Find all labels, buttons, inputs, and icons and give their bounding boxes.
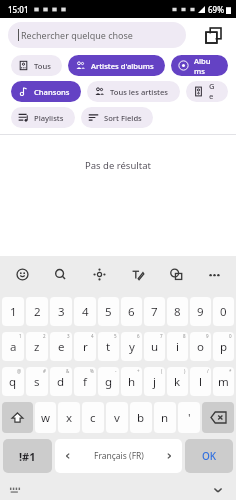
staticText: z xyxy=(34,339,40,355)
button[interactable]: Tous xyxy=(11,55,62,76)
staticText: k xyxy=(174,374,181,390)
staticText: Genres xyxy=(209,81,217,102)
staticText: v xyxy=(114,410,120,426)
staticText: t xyxy=(106,339,111,355)
button[interactable]: 3 xyxy=(50,297,72,326)
button[interactable]: x xyxy=(58,402,80,433)
button[interactable]: * xyxy=(213,367,234,396)
button[interactable]: 5 xyxy=(98,297,119,326)
button[interactable]: & xyxy=(50,367,72,396)
staticText: l xyxy=(199,374,202,390)
button[interactable]: Rechercher quelque chose xyxy=(8,22,186,48)
button[interactable]: Sort Fields xyxy=(81,107,153,128)
staticText: + xyxy=(137,368,140,374)
staticText: 15:01 xyxy=(8,4,29,15)
button[interactable]: 7 xyxy=(144,332,165,361)
staticText: / xyxy=(207,368,209,374)
staticText: 4 xyxy=(82,304,89,320)
staticText: - xyxy=(115,368,117,374)
staticText: y xyxy=(129,339,135,355)
button[interactable]: # xyxy=(26,367,48,396)
button[interactable]: - xyxy=(98,367,119,396)
button[interactable]: 7 xyxy=(144,297,165,326)
button[interactable]: Français (FR) xyxy=(55,439,182,473)
staticText: 8 xyxy=(183,333,186,339)
button[interactable]: 1 xyxy=(2,332,24,361)
button[interactable]: n xyxy=(154,402,176,433)
button[interactable]: w xyxy=(35,402,56,433)
button[interactable]: 9 xyxy=(190,332,211,361)
staticText: 5 xyxy=(105,304,112,320)
staticText: 7 xyxy=(151,304,158,320)
staticText: w xyxy=(41,410,51,426)
staticText: Artistes d'albums xyxy=(91,61,154,71)
button[interactable]: 6 xyxy=(121,332,142,361)
button[interactable]: Playlists xyxy=(11,107,75,128)
button[interactable]: Albums xyxy=(171,55,228,76)
staticText: 1 xyxy=(19,333,22,339)
button[interactable]: 4 xyxy=(74,332,96,361)
button[interactable]: Hide keyboard xyxy=(212,484,224,496)
button[interactable]: Chansons xyxy=(11,81,81,102)
button[interactable]: ) xyxy=(167,367,188,396)
button[interactable]: / xyxy=(190,367,211,396)
button[interactable]: More options xyxy=(202,262,226,286)
staticText: Tous les artistes xyxy=(110,87,169,97)
staticText: j xyxy=(153,374,156,390)
staticText: 2 xyxy=(43,333,46,339)
button[interactable]: 1 xyxy=(2,297,24,326)
button[interactable]: 9 xyxy=(190,297,211,326)
button[interactable]: Emoji xyxy=(10,262,34,286)
button[interactable]: 0 xyxy=(213,297,234,326)
staticText: 6 xyxy=(128,304,135,320)
staticText: 3 xyxy=(67,333,70,339)
button[interactable]: 2 xyxy=(26,297,48,326)
button[interactable]: Artistes d'albums xyxy=(68,55,165,76)
button[interactable]: Shift xyxy=(2,402,33,433)
button[interactable]: 8 xyxy=(167,297,188,326)
button[interactable]: c xyxy=(82,402,104,433)
staticText: 8 xyxy=(174,304,181,320)
staticText: Pas de résultat xyxy=(85,159,151,172)
staticText: OK xyxy=(202,449,217,463)
staticText: 0 xyxy=(229,333,232,339)
button[interactable]: Keyboard layout xyxy=(9,484,21,496)
staticText: 1 xyxy=(10,304,17,320)
button[interactable]: Handwriting xyxy=(125,262,149,286)
button[interactable]: ( xyxy=(144,367,165,396)
button[interactable]: OK xyxy=(185,439,233,473)
staticText: ' xyxy=(188,410,191,426)
button[interactable]: Genres xyxy=(186,81,228,102)
staticText: 0 xyxy=(220,304,227,320)
button[interactable]: 5 xyxy=(98,332,119,361)
button[interactable]: @ xyxy=(2,367,24,396)
button[interactable]: Move cursor xyxy=(87,262,111,286)
button[interactable]: Tous les artistes xyxy=(87,81,180,102)
button[interactable]: v xyxy=(106,402,128,433)
button[interactable]: b xyxy=(130,402,152,433)
button[interactable]: 2 xyxy=(26,332,48,361)
staticText: p xyxy=(220,339,228,355)
button[interactable]: % xyxy=(74,367,96,396)
button[interactable]: 6 xyxy=(121,297,142,326)
staticText: 6 xyxy=(137,333,140,339)
button[interactable]: 4 xyxy=(74,297,96,326)
staticText: Playlists xyxy=(34,113,64,123)
button[interactable]: Search xyxy=(48,262,72,286)
staticText: Sort Fields xyxy=(104,113,142,123)
button[interactable]: 3 xyxy=(50,332,72,361)
button[interactable]: Backspace xyxy=(202,402,234,433)
button[interactable]: !#1 xyxy=(3,439,52,473)
button[interactable]: 8 xyxy=(167,332,188,361)
button[interactable]: + xyxy=(121,367,142,396)
button[interactable]: ' xyxy=(178,402,200,433)
staticText: Français (FR) xyxy=(94,450,144,462)
staticText: n xyxy=(161,410,169,426)
button[interactable]: Translate xyxy=(164,262,188,286)
staticText: % xyxy=(90,368,94,374)
staticText: 2 xyxy=(34,304,41,320)
staticText: 7 xyxy=(160,333,163,339)
button[interactable]: 0 xyxy=(213,332,234,361)
staticText: & xyxy=(66,368,70,374)
button[interactable]: Select library xyxy=(198,20,228,50)
